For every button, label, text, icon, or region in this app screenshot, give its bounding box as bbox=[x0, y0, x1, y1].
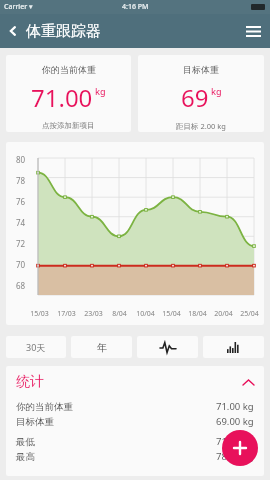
staticText: 15/03 bbox=[30, 309, 49, 319]
staticText: 76 bbox=[16, 196, 26, 207]
staticText: 71.00 kg bbox=[216, 400, 254, 413]
staticText: 74 bbox=[16, 217, 26, 228]
staticText: 78.50 kg bbox=[216, 450, 254, 463]
staticText: 17/03 bbox=[57, 309, 76, 319]
staticText: 20/04 bbox=[214, 309, 233, 319]
staticText: 最高 bbox=[16, 451, 35, 463]
button[interactable]: 最低 bbox=[16, 434, 254, 449]
button[interactable]: Back bbox=[0, 18, 26, 44]
staticText: 68 bbox=[16, 280, 26, 291]
staticText: 72 bbox=[16, 238, 26, 249]
staticText: 8/04 bbox=[112, 309, 127, 319]
staticText: 69 bbox=[181, 81, 209, 114]
staticText: 目标体重 bbox=[16, 416, 54, 428]
button[interactable]: Line chart bbox=[137, 336, 198, 358]
staticText: Carrier ▾ bbox=[4, 2, 33, 12]
staticText: 统计 bbox=[16, 373, 44, 391]
button[interactable]: 30天 bbox=[6, 336, 66, 358]
button[interactable]: 年 bbox=[71, 336, 132, 358]
staticText: 距目标 2.00 kg bbox=[176, 121, 226, 131]
staticText: 你的当前体重 bbox=[42, 64, 96, 75]
staticText: 点按添加新项目 bbox=[42, 121, 95, 130]
button[interactable]: 目标体重 bbox=[16, 414, 254, 429]
staticText: 年 bbox=[97, 341, 107, 354]
button[interactable]: 80 bbox=[6, 142, 264, 325]
staticText: 10/04 bbox=[136, 309, 155, 319]
staticText: 18/04 bbox=[188, 309, 207, 319]
staticText: 30天 bbox=[26, 341, 46, 353]
staticText: 71.00 kg bbox=[216, 435, 254, 448]
button[interactable]: 最高 bbox=[16, 449, 254, 464]
button[interactable]: Add entry bbox=[222, 430, 258, 466]
button[interactable]: Bar chart bbox=[203, 336, 264, 358]
staticText: 70 bbox=[16, 259, 26, 270]
button[interactable]: 统计 bbox=[16, 373, 254, 391]
staticText: 25/04 bbox=[240, 309, 259, 319]
staticText: 78 bbox=[16, 175, 26, 186]
staticText: 最低 bbox=[16, 436, 35, 448]
staticText: 体重跟踪器 bbox=[26, 22, 101, 41]
button[interactable]: 你的当前体重 bbox=[6, 55, 131, 132]
staticText: kg bbox=[95, 85, 106, 97]
staticText: 23/03 bbox=[84, 309, 103, 319]
staticText: 69.00 kg bbox=[216, 415, 254, 428]
staticText: 15/04 bbox=[162, 309, 181, 319]
button[interactable]: Menu bbox=[242, 20, 264, 42]
button[interactable]: 目标体重 bbox=[138, 55, 264, 132]
staticText: 4:16 PM bbox=[122, 2, 149, 12]
staticText: 目标体重 bbox=[183, 64, 219, 75]
staticText: 71.00 bbox=[31, 81, 93, 114]
staticText: 80 bbox=[16, 154, 26, 165]
button[interactable]: 你的当前体重 bbox=[16, 399, 254, 414]
staticText: 你的当前体重 bbox=[16, 401, 73, 413]
staticText: kg bbox=[211, 85, 222, 97]
